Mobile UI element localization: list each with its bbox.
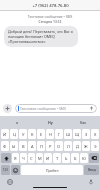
button[interactable]: Г bbox=[55, 129, 63, 139]
staticText: Сегодня 13:12 bbox=[0, 19, 100, 23]
button[interactable]: Ввод bbox=[84, 165, 99, 175]
button[interactable]: А bbox=[28, 141, 36, 151]
button[interactable]: Я bbox=[12, 153, 19, 163]
button[interactable]: Т bbox=[53, 153, 61, 163]
button[interactable]: Ь bbox=[62, 153, 70, 163]
staticText: Щ bbox=[75, 132, 80, 137]
staticText: В bbox=[22, 144, 25, 149]
button[interactable]: Emoji bbox=[11, 165, 20, 175]
staticText: Пробел bbox=[46, 168, 59, 173]
staticText: Л bbox=[67, 144, 70, 149]
button[interactable]: Ну bbox=[34, 116, 67, 128]
button[interactable]: Э bbox=[91, 141, 99, 151]
staticText: Ш bbox=[66, 132, 71, 137]
button[interactable]: К bbox=[28, 129, 36, 139]
button[interactable]: Change keyboard bbox=[6, 178, 13, 185]
staticText: Х bbox=[94, 132, 97, 137]
button[interactable]: У bbox=[19, 129, 27, 139]
staticText: Ю bbox=[82, 156, 86, 161]
staticText: +7 (962) 478-76-80 bbox=[32, 3, 69, 9]
staticText: К bbox=[31, 132, 34, 137]
staticText: Ц bbox=[13, 132, 16, 137]
button[interactable]: Как bbox=[67, 116, 100, 128]
button[interactable]: 123 bbox=[1, 165, 10, 175]
staticText: Ь bbox=[65, 156, 68, 161]
button[interactable]: М bbox=[36, 153, 43, 163]
button[interactable]: Добрый день! Пересказать, что Вас о поли… bbox=[4, 26, 78, 47]
staticText: Э bbox=[94, 144, 97, 149]
button[interactable]: Shift bbox=[1, 153, 11, 163]
staticText: Ну bbox=[48, 120, 53, 125]
button[interactable]: Щ bbox=[73, 129, 81, 139]
button[interactable]: я bbox=[0, 116, 34, 128]
staticText: З bbox=[85, 132, 88, 137]
staticText: Р bbox=[49, 144, 52, 149]
button[interactable]: Ф bbox=[1, 141, 9, 151]
button[interactable]: Ц bbox=[10, 129, 18, 139]
staticText: Ввод bbox=[88, 168, 96, 172]
button[interactable]: Ш bbox=[64, 129, 72, 139]
staticText: Ы bbox=[12, 144, 16, 149]
button[interactable]: Ж bbox=[82, 141, 90, 151]
staticText: Текстовое сообщение • SMS bbox=[0, 14, 100, 18]
button[interactable]: Л bbox=[64, 141, 72, 151]
staticText: П bbox=[40, 144, 43, 149]
staticText: О bbox=[57, 144, 61, 149]
button[interactable]: Д bbox=[73, 141, 81, 151]
button[interactable]: Ы bbox=[10, 141, 18, 151]
staticText: Д bbox=[76, 144, 79, 149]
button[interactable]: П bbox=[37, 141, 45, 151]
staticText: я bbox=[16, 120, 19, 125]
button[interactable]: Е bbox=[37, 129, 45, 139]
staticText: Н bbox=[49, 132, 52, 137]
button[interactable]: Й bbox=[1, 129, 9, 139]
button[interactable]: И bbox=[44, 153, 52, 163]
staticText: А bbox=[31, 144, 34, 149]
staticText: Ч bbox=[22, 156, 25, 161]
button[interactable]: Backspace bbox=[89, 153, 99, 163]
button[interactable]: О bbox=[55, 141, 63, 151]
button[interactable]: Add attachment bbox=[3, 104, 12, 113]
button[interactable]: Н bbox=[46, 129, 54, 139]
staticText: Добрый день! Пересказать, что Вас о поли… bbox=[8, 29, 74, 44]
button[interactable]: З bbox=[82, 129, 90, 139]
staticText: Й bbox=[3, 132, 7, 137]
button[interactable]: Б bbox=[71, 153, 79, 163]
staticText: 123 bbox=[3, 168, 8, 172]
staticText: У bbox=[22, 132, 25, 137]
button[interactable]: Текстовое сообщение • SMS bbox=[15, 104, 97, 113]
staticText: Я bbox=[14, 156, 17, 161]
button[interactable]: Dictation bbox=[87, 178, 94, 185]
staticText: Е bbox=[40, 132, 43, 137]
button[interactable]: Ю bbox=[80, 153, 88, 163]
staticText: Текстовое сообщение • SMS bbox=[20, 106, 89, 111]
button[interactable]: Ч bbox=[20, 153, 27, 163]
staticText: Как bbox=[80, 120, 87, 125]
button[interactable]: Р bbox=[46, 141, 54, 151]
staticText: И bbox=[46, 156, 50, 161]
button[interactable]: С bbox=[28, 153, 35, 163]
staticText: М bbox=[38, 156, 42, 161]
staticText: Ф bbox=[3, 144, 7, 149]
staticText: Ж bbox=[84, 144, 88, 149]
staticText: Г bbox=[58, 132, 61, 137]
button[interactable]: Пробел bbox=[21, 165, 83, 175]
button[interactable]: В bbox=[19, 141, 27, 151]
staticText: Т bbox=[56, 156, 59, 161]
button[interactable]: Х bbox=[91, 129, 99, 139]
other: Voice message bbox=[89, 106, 94, 111]
staticText: Б bbox=[74, 156, 77, 161]
staticText: С bbox=[30, 156, 33, 161]
